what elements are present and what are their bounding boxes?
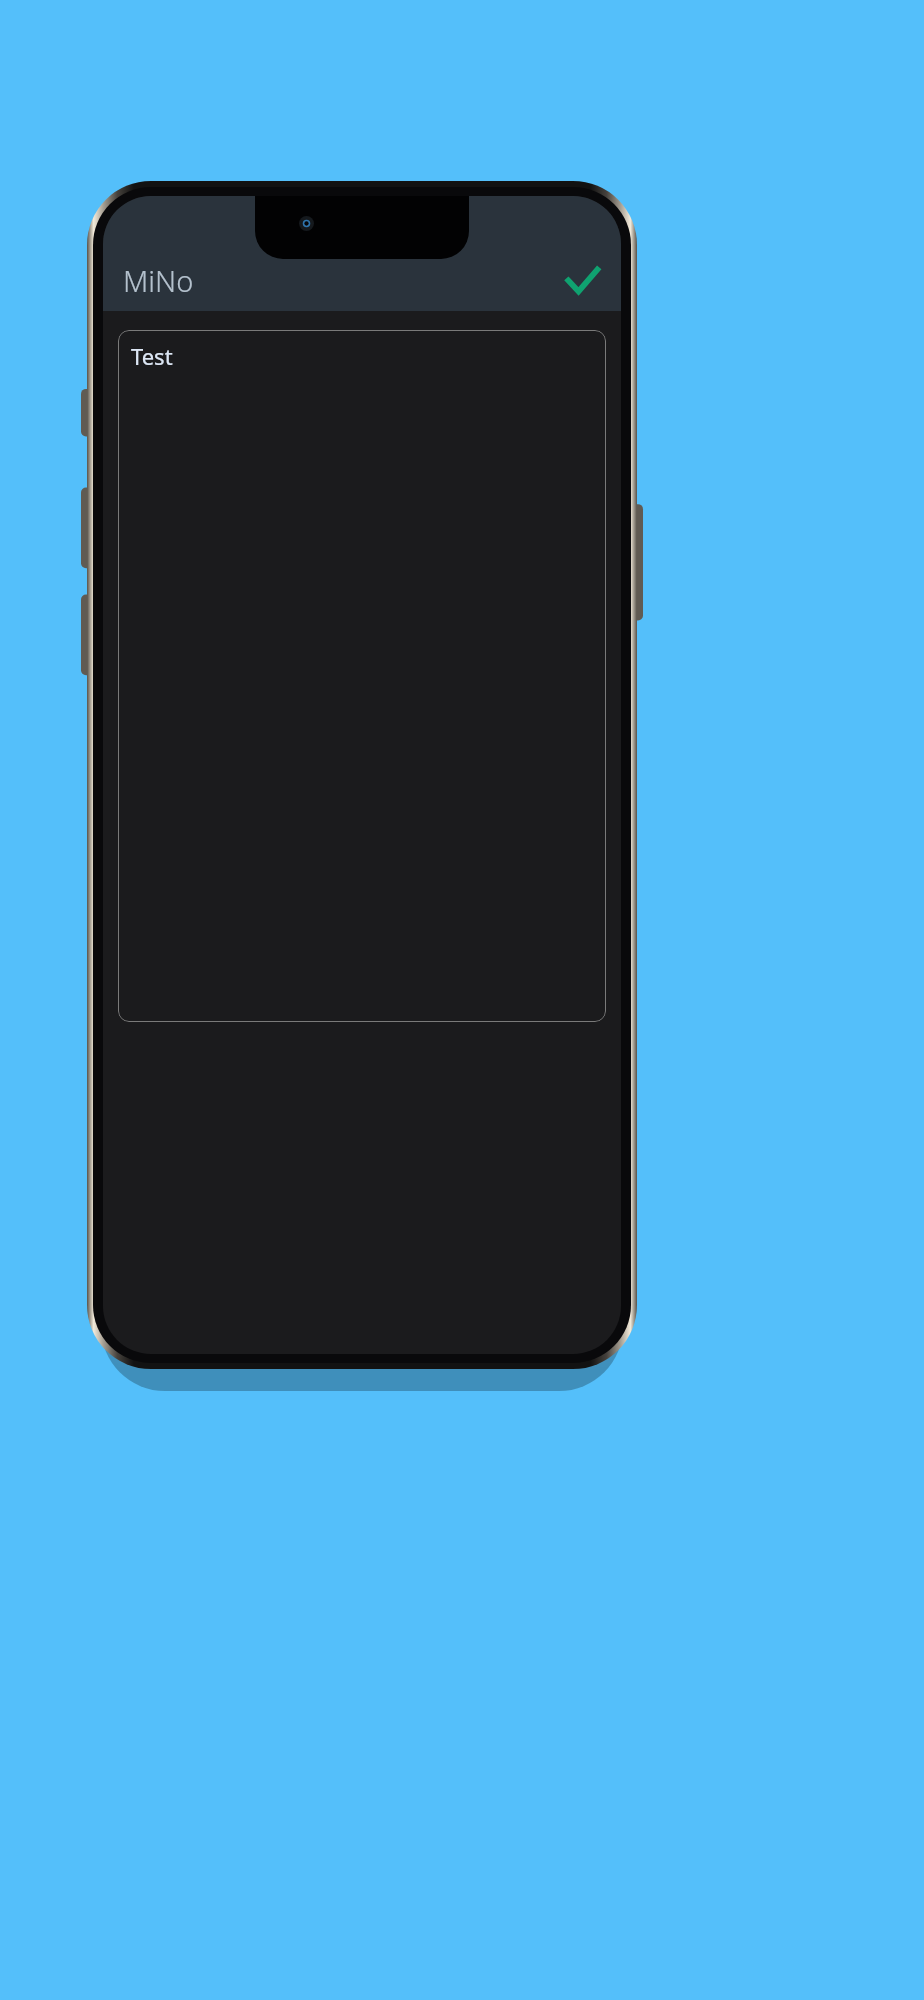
staticText: MiNo xyxy=(123,261,194,300)
staticText: Test xyxy=(131,341,173,371)
button[interactable]: Test xyxy=(118,330,606,1022)
button[interactable]: Save note xyxy=(555,253,609,307)
